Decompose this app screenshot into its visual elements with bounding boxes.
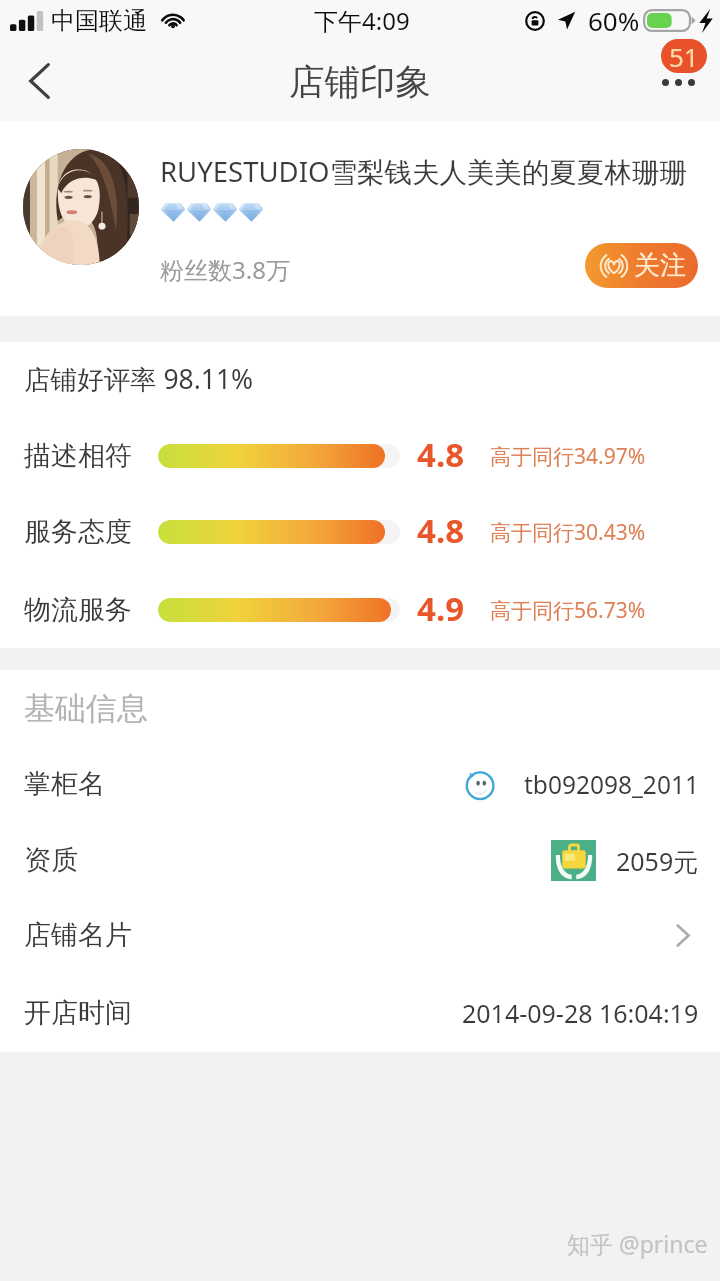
button[interactable]: Shop card: [0, 897, 720, 973]
staticText: 物流服务: [24, 593, 132, 627]
staticText: 高于同行56.73%: [490, 596, 646, 625]
staticText: 2014-09-28 16:04:19: [462, 996, 699, 1030]
staticText: 60%: [588, 3, 640, 38]
staticText: 基础信息: [24, 689, 148, 728]
button[interactable]: Qualification: [0, 822, 720, 898]
staticText: 4.8: [417, 508, 465, 544]
staticText: 高于同行34.97%: [490, 442, 646, 471]
staticText: 店铺印象: [289, 60, 431, 105]
staticText: 店铺好评率 98.11%: [24, 361, 254, 397]
button[interactable]: More options: [636, 38, 720, 118]
staticText: 知乎 @prince: [567, 1228, 708, 1259]
staticText: 资质: [24, 843, 78, 877]
staticText: 下午4:09: [314, 4, 410, 37]
button[interactable]: Opening time: [0, 975, 720, 1051]
staticText: 店铺名片: [24, 918, 132, 952]
staticText: 51: [669, 39, 699, 73]
staticText: RUYESTUDIO雪梨钱夫人美美的夏夏林珊珊: [160, 153, 687, 191]
staticText: 关注: [634, 249, 686, 282]
staticText: 粉丝数3.8万: [160, 253, 290, 286]
staticText: 4.9: [417, 586, 465, 622]
staticText: 服务态度: [24, 515, 132, 549]
staticText: 开店时间: [24, 996, 132, 1030]
staticText: 中国联通: [51, 6, 147, 36]
button[interactable]: Shop keeper name: [0, 746, 720, 822]
staticText: 掌柜名: [24, 767, 105, 801]
staticText: 高于同行30.43%: [490, 518, 646, 547]
staticText: tb092098_2011: [524, 768, 699, 801]
button[interactable]: RUYESTUDIO雪梨钱夫人美美的夏夏林珊珊: [150, 137, 695, 297]
button[interactable]: Back: [0, 41, 80, 121]
staticText: 描述相符: [24, 439, 132, 473]
staticText: 4.8: [417, 432, 465, 468]
button[interactable]: 关注: [585, 243, 698, 288]
button[interactable]: Shop avatar: [23, 149, 139, 265]
staticText: 2059元: [616, 844, 699, 878]
